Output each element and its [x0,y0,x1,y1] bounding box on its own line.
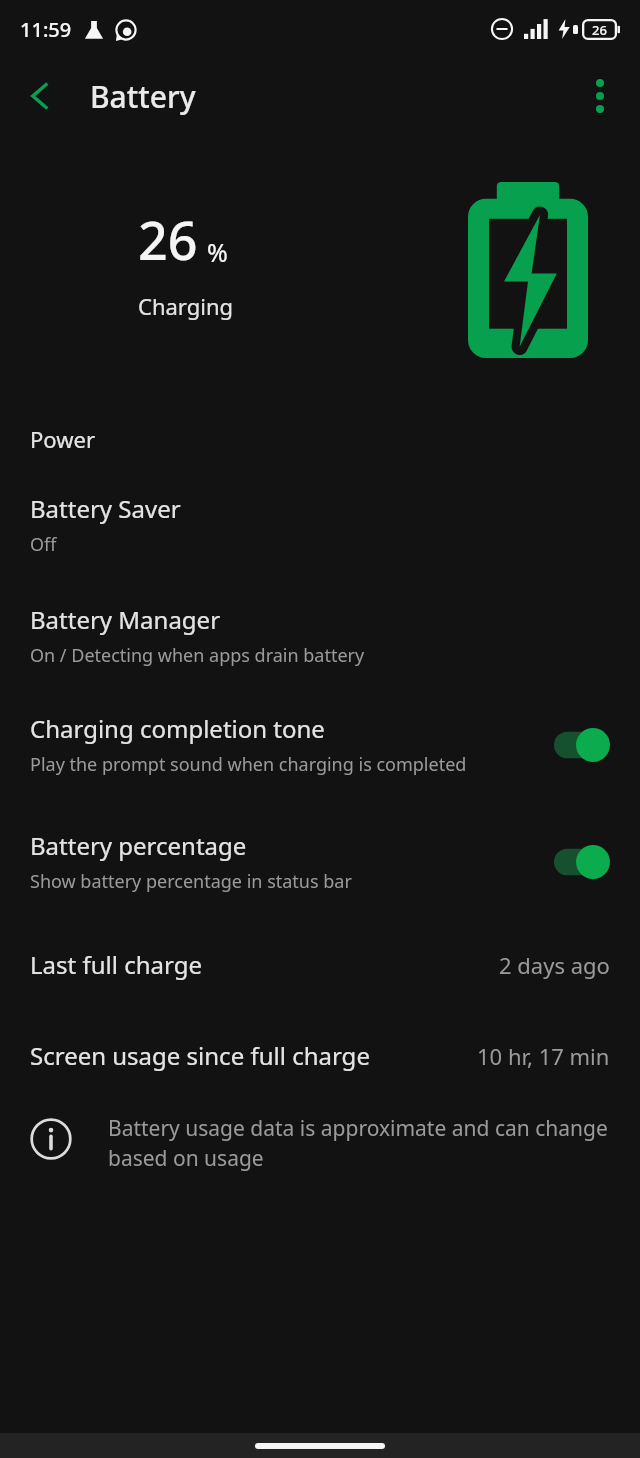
button[interactable]: Battery Manager [0,603,640,668]
staticText: Off [30,532,57,557]
staticText: Charging completion tone [30,712,325,745]
staticText: Battery percentage [30,829,247,862]
staticText: Charging [138,291,234,321]
button[interactable]: Power [0,424,640,454]
staticText: Battery usage data is approximate and ca… [108,1114,610,1172]
button[interactable]: Back [12,68,68,124]
staticText: On / Detecting when apps drain battery [30,643,365,668]
staticText: Battery Manager [30,603,221,636]
staticText: Last full charge [30,948,499,981]
button[interactable]: Last full charge [0,948,640,981]
staticText: 26 [138,204,198,275]
button[interactable]: Screen usage since full charge [0,1039,640,1072]
staticText: Power [30,424,95,454]
button[interactable]: Battery Saver [0,492,640,557]
staticText: 26 [592,21,607,39]
staticText: 11:59 [20,16,72,43]
staticText: Play the prompt sound when charging is c… [30,752,467,777]
staticText: Battery [90,76,196,117]
staticText: % [207,235,228,269]
button[interactable]: Battery percentage [0,829,640,894]
button[interactable]: More options [572,68,628,124]
staticText: Screen usage since full charge [30,1039,477,1072]
staticText: 2 days ago [499,950,610,980]
button[interactable]: Charging completion tone [0,712,640,777]
staticText: Battery Saver [30,492,181,525]
staticText: Show battery percentage in status bar [30,869,352,894]
staticText: 10 hr, 17 min [477,1041,610,1071]
